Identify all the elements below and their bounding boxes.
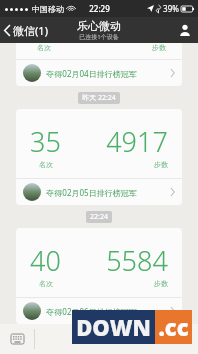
staticText: 22:29: [89, 3, 110, 14]
staticText: 名次: [39, 279, 53, 288]
staticText: 40: [30, 242, 61, 279]
staticText: 中国移动: [32, 4, 64, 14]
staticText: 步数: [152, 43, 166, 52]
staticText: 夺得02月06日排行榜冠军: [46, 306, 137, 317]
staticText: 步数: [154, 279, 168, 288]
button[interactable]: 夺得02月05日排行榜冠军: [16, 179, 182, 205]
staticText: 5584: [106, 242, 168, 279]
staticText: 夺得02月04日排行榜冠军: [46, 68, 137, 79]
staticText: 步数: [154, 160, 168, 169]
staticText: 名次: [37, 43, 51, 52]
button[interactable]: 夺得02月04日排行榜冠军: [16, 60, 182, 86]
staticText: 22:24: [90, 212, 108, 222]
button[interactable]: 名次: [16, 43, 182, 86]
staticText: .cc: [158, 312, 189, 342]
button[interactable]: Profile: [172, 17, 198, 43]
staticText: 35: [30, 123, 61, 160]
staticText: 名次: [39, 160, 53, 169]
button[interactable]: 微信(1): [0, 17, 54, 43]
staticText: 已连接1个设备: [79, 33, 119, 41]
staticText: DOWN: [76, 312, 151, 342]
staticText: 4917: [106, 123, 168, 160]
staticText: 乐心微动: [77, 19, 121, 33]
button[interactable]: 35: [16, 109, 182, 205]
staticText: 微信(1): [13, 23, 48, 38]
staticText: 39%: [163, 3, 179, 14]
staticText: 夺得02月05日排行榜冠军: [46, 187, 137, 198]
button[interactable]: 40: [16, 228, 182, 324]
button[interactable]: 夺得02月06日排行榜冠军: [16, 298, 182, 324]
staticText: 昨天 22:24: [82, 93, 116, 103]
button[interactable]: Keyboard: [0, 324, 34, 354]
